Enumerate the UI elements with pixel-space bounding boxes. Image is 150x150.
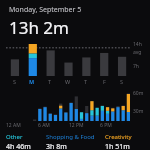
staticText: S xyxy=(120,78,124,85)
staticText: 7h xyxy=(133,63,139,70)
staticText: F xyxy=(103,78,106,85)
staticText: 14h xyxy=(133,41,142,48)
staticText: W xyxy=(65,78,71,85)
staticText: Monday, September 5 xyxy=(9,5,82,15)
button[interactable]: Shopping & Food xyxy=(46,133,105,150)
button[interactable]: Creativity xyxy=(105,133,146,150)
button[interactable]: Monday, September 5 xyxy=(0,0,150,40)
button[interactable]: Other xyxy=(6,133,46,150)
staticText: 60m xyxy=(133,90,144,97)
staticText: Creativity xyxy=(105,133,132,141)
staticText: 3h 8m xyxy=(46,142,67,150)
button[interactable]: 60m xyxy=(0,88,150,130)
staticText: Shopping & Food xyxy=(46,133,95,141)
button[interactable]: S xyxy=(0,40,150,86)
staticText: 12 AM xyxy=(6,122,21,129)
staticText: Other xyxy=(6,133,23,141)
staticText: 1h 51m xyxy=(105,142,130,150)
staticText: 4h 46m xyxy=(6,142,31,150)
staticText: 13h 2m xyxy=(9,16,69,39)
staticText: 6 PM xyxy=(100,122,112,129)
staticText: T xyxy=(84,78,88,85)
staticText: M xyxy=(29,78,35,85)
staticText: T xyxy=(48,78,52,85)
staticText: S xyxy=(13,78,17,85)
staticText: avg xyxy=(133,49,142,56)
staticText: 6 AM xyxy=(38,122,50,129)
staticText: 12 PM xyxy=(69,122,84,129)
staticText: 30m xyxy=(133,108,144,115)
